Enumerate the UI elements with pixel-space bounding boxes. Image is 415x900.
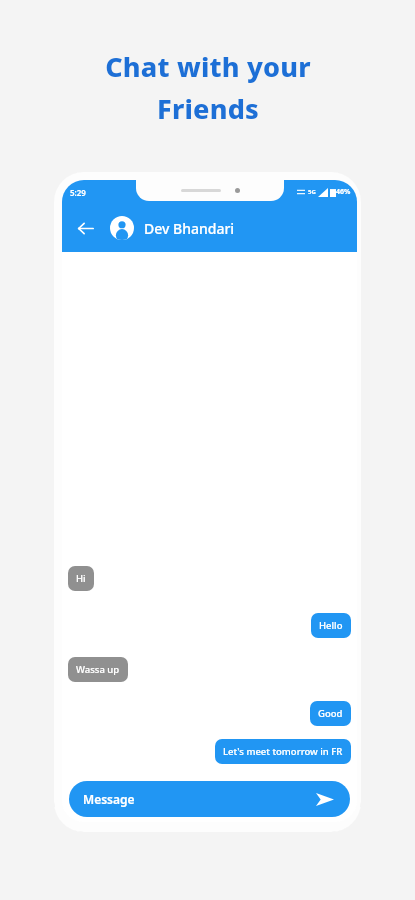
button[interactable]: Send [314,788,336,810]
staticText: Message [83,791,314,807]
staticText: Wassa up [76,663,120,676]
button[interactable]: Dev Bhandari [110,204,357,252]
button[interactable]: Message [69,781,350,817]
staticText: 46% [336,187,351,197]
button[interactable]: Let's meet tomorrow in FR [215,739,351,764]
button[interactable]: Hi [68,566,94,591]
staticText: Good [318,707,343,720]
button[interactable]: Hello [311,613,351,638]
staticText: 5G [308,188,316,196]
staticText: Let's meet tomorrow in FR [223,745,343,758]
staticText: Hello [319,619,343,632]
button[interactable]: Back [68,211,102,245]
button[interactable]: Good [310,701,351,726]
staticText: Chat with your [105,48,311,85]
staticText: Dev Bhandari [144,219,235,238]
staticText: Friends [157,90,259,127]
staticText: 5:29 [70,187,86,198]
staticText: Hi [76,572,86,585]
button[interactable]: Wassa up [68,657,128,682]
